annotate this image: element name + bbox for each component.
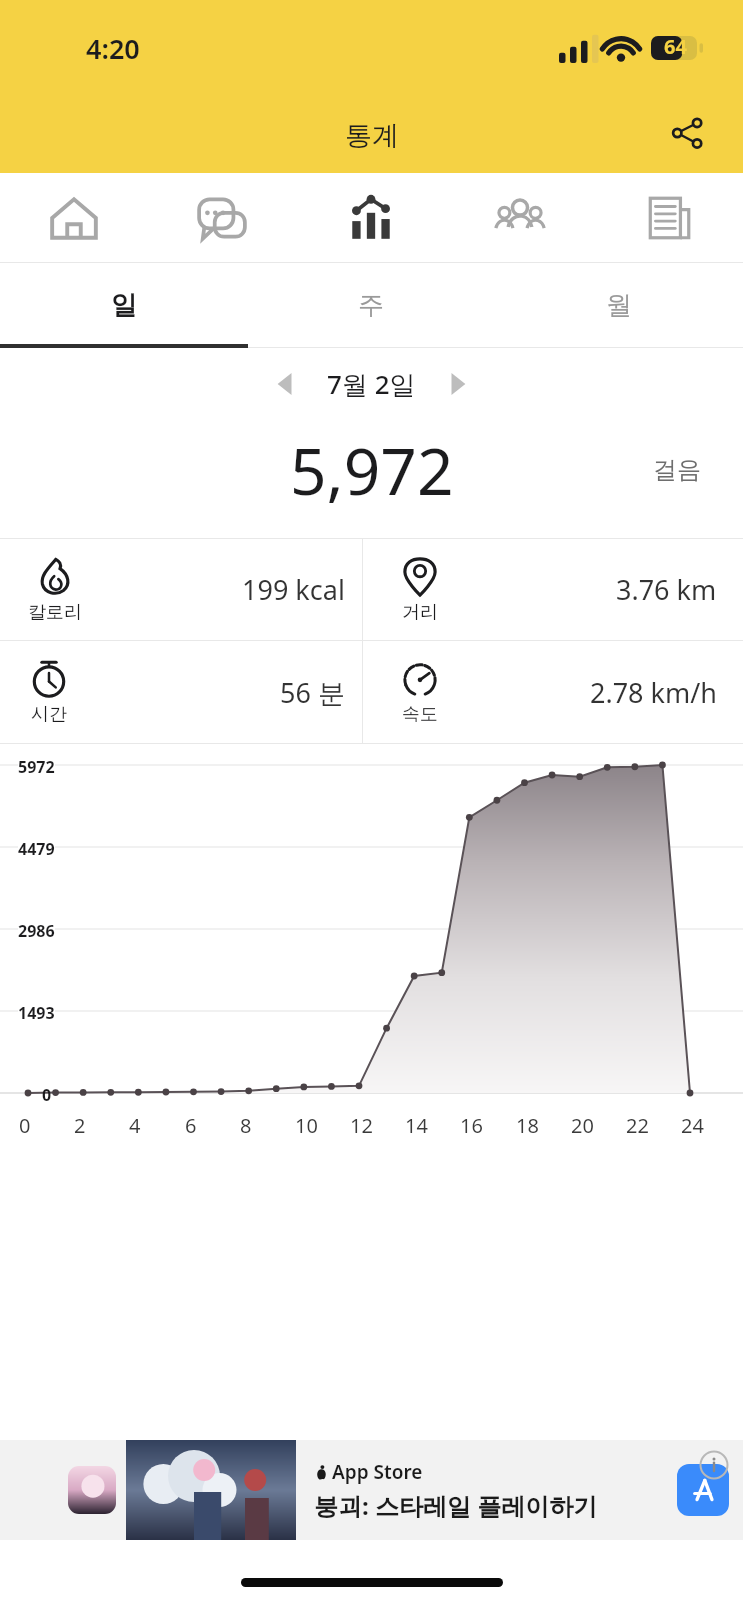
staticText: 6 [185,1112,197,1139]
staticText: 8 [240,1112,252,1139]
staticText: 10 [295,1112,318,1139]
button[interactable]: Stats [296,173,445,262]
staticText: 20 [571,1112,594,1139]
staticText: 7월 2일 [327,366,416,402]
button[interactable]: 일 [0,263,247,348]
button[interactable]: 월 [495,263,743,348]
staticText: 0 [19,1112,31,1139]
staticText: 걸음 [653,455,701,485]
staticText: 주 [358,289,384,322]
staticText: App Store [332,1459,423,1485]
staticText: 0 [42,1084,52,1106]
staticText: 2 [74,1112,86,1139]
staticText: 24 [681,1112,704,1139]
staticText: 56 분 [280,674,345,711]
staticText: 16 [460,1112,483,1139]
staticText: 칼로리 [28,601,82,624]
button[interactable]: 칼로리 [0,539,371,640]
button[interactable]: Chat [148,173,296,262]
button[interactable]: 속도 [371,641,743,743]
staticText: 4479 [18,838,55,860]
button[interactable]: Share [655,101,719,165]
button[interactable]: Open App Store [677,1464,729,1516]
staticText: 시간 [31,703,67,726]
button[interactable]: 시간 [0,641,371,743]
staticText: 22 [626,1112,649,1139]
staticText: 2.78 km/h [590,674,717,711]
staticText: 5,972 [290,427,454,514]
staticText: 3.76 km [616,571,717,608]
button[interactable]: Next day [434,361,480,407]
staticText: 14 [405,1112,428,1139]
button[interactable]: Home [0,173,148,262]
staticText: 2986 [18,920,55,942]
button[interactable]: 거리 [371,539,743,640]
staticText: 붕괴: 스타레일 플레이하기 [314,1489,598,1522]
staticText: 18 [516,1112,539,1139]
staticText: 1493 [18,1002,55,1024]
staticText: 5972 [18,756,55,778]
staticText: 199 kcal [242,571,345,608]
staticText: 4:20 [86,30,140,67]
staticText: 속도 [402,703,438,726]
button[interactable]: App Store [0,1440,743,1540]
staticText: 거리 [402,601,438,624]
button[interactable]: News [594,173,743,262]
staticText: 일 [111,289,137,322]
staticText: 통계 [345,119,399,153]
button[interactable]: Previous day [263,361,309,407]
button[interactable]: Ad info [699,1450,729,1480]
staticText: 월 [606,289,632,322]
button[interactable]: 주 [247,263,495,348]
staticText: 12 [350,1112,373,1139]
button[interactable]: Friends [445,173,594,262]
staticText: 4 [129,1112,141,1139]
staticText: 64 [664,33,687,60]
